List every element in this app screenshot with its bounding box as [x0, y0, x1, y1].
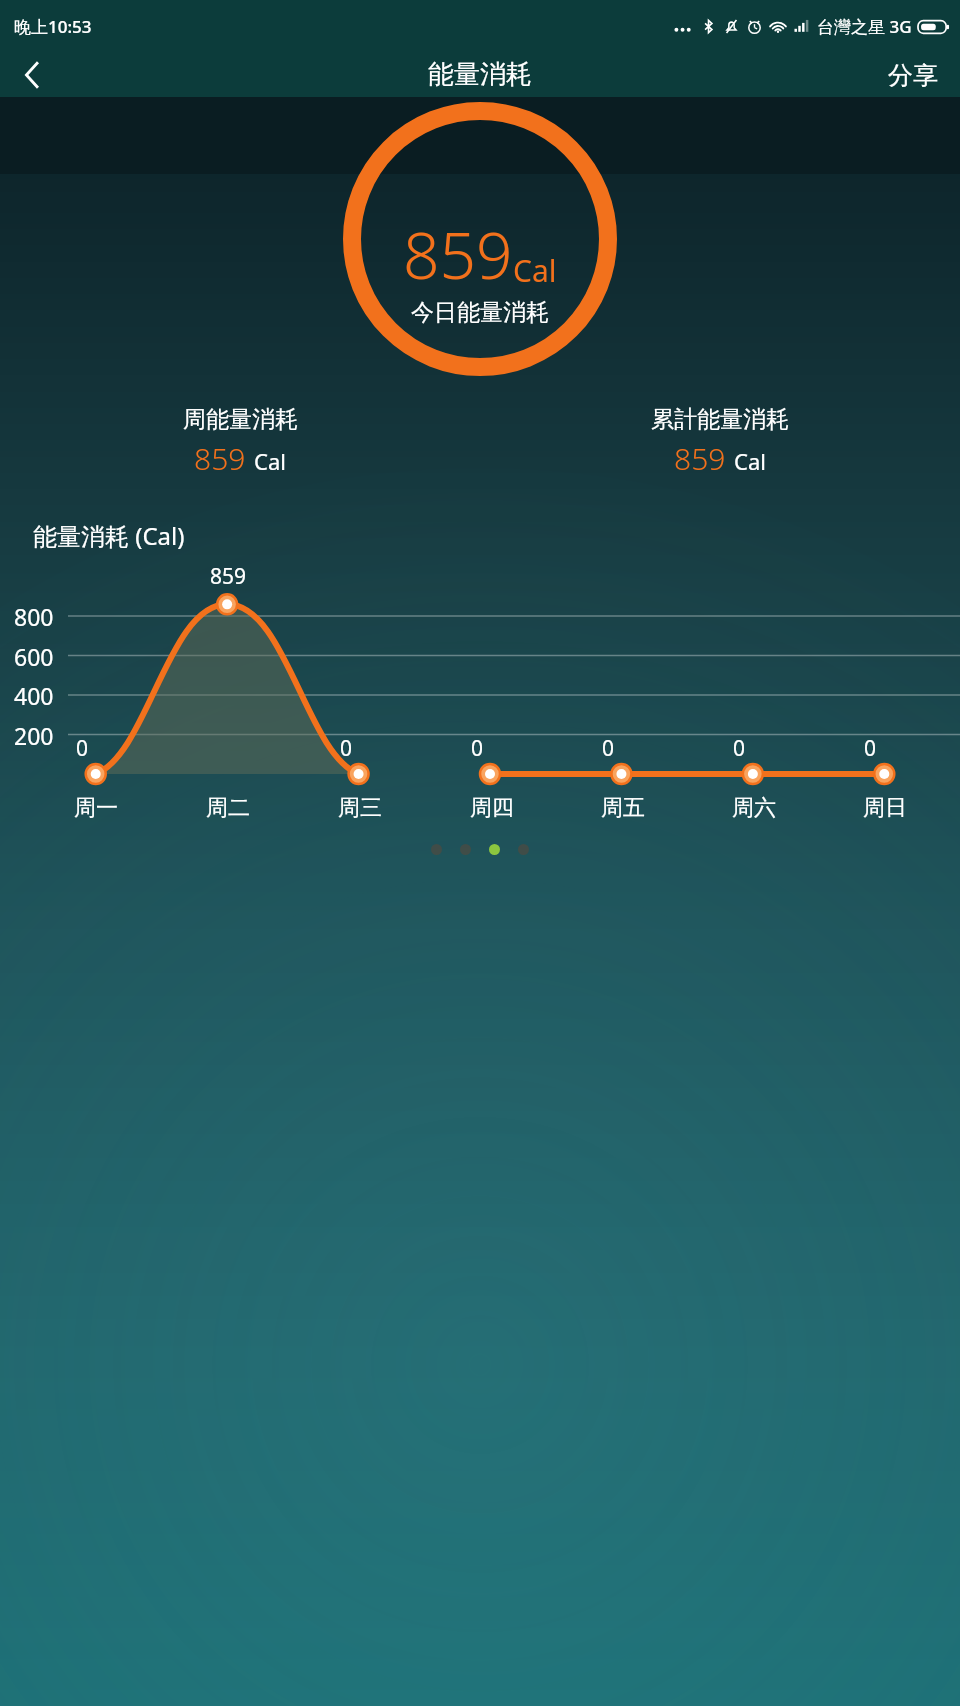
staticText: 周五: [601, 794, 645, 822]
staticText: 周二: [206, 794, 250, 822]
staticText: 今日能量消耗: [411, 298, 549, 327]
staticText: 0: [340, 734, 353, 763]
staticText: 600: [14, 641, 54, 672]
staticText: 周一: [74, 794, 118, 822]
staticText: 859: [210, 562, 247, 591]
staticText: 859: [403, 211, 513, 298]
staticText: 0: [602, 734, 615, 763]
button[interactable]: 累計能量消耗: [480, 405, 960, 479]
button[interactable]: Page: [518, 844, 529, 855]
button[interactable]: Page: [460, 844, 471, 855]
staticText: 200: [14, 720, 54, 751]
staticText: 台灣之星 3G: [817, 15, 912, 38]
staticText: 累計能量消耗: [651, 405, 789, 434]
button[interactable]: Back: [6, 52, 58, 97]
button[interactable]: 周能量消耗: [0, 405, 480, 479]
staticText: 800: [14, 601, 54, 632]
staticText: 周日: [863, 794, 907, 822]
staticText: 周三: [338, 794, 382, 822]
button[interactable]: 分享: [866, 52, 960, 97]
staticText: 0: [471, 734, 484, 763]
staticText: 能量消耗 (Cal): [33, 519, 185, 552]
staticText: 晚上10:53: [14, 15, 92, 38]
staticText: Cal: [734, 446, 766, 476]
staticText: 分享: [888, 60, 938, 89]
staticText: 0: [733, 734, 746, 763]
staticText: Cal: [254, 446, 286, 476]
staticText: 能量消耗: [428, 58, 532, 91]
staticText: 周六: [732, 794, 776, 822]
staticText: 859: [674, 438, 726, 479]
button[interactable]: Page: [431, 844, 442, 855]
staticText: 400: [14, 680, 54, 711]
staticText: 0: [864, 734, 877, 763]
staticText: 0: [76, 734, 89, 763]
staticText: Cal: [513, 250, 557, 291]
staticText: 周四: [470, 794, 514, 822]
button[interactable]: Page: [489, 844, 500, 855]
staticText: 859: [194, 438, 246, 479]
staticText: 周能量消耗: [183, 405, 298, 434]
